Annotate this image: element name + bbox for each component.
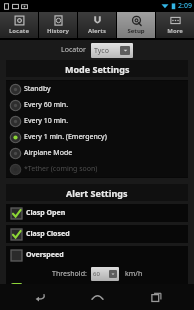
- button[interactable]: Locate: [0, 12, 38, 38]
- staticText: Threshold:: [52, 269, 87, 279]
- staticText: km/h: [125, 269, 143, 279]
- staticText: Every 60 min.: [24, 100, 69, 110]
- button[interactable]: 60: [91, 267, 119, 281]
- staticText: Locate: [9, 27, 29, 35]
- button[interactable]: Clasp Open: [6, 204, 188, 222]
- staticText: Overspeed: [26, 250, 64, 260]
- staticText: More: [167, 27, 183, 35]
- button[interactable]: History: [39, 12, 77, 38]
- staticText: Clasp Closed: [26, 229, 70, 239]
- button[interactable]: Setup: [117, 12, 155, 38]
- button[interactable]: Every 10 min.: [6, 113, 188, 129]
- staticText: *Tether (coming soon): [24, 164, 98, 174]
- staticText: 2:09: [178, 1, 192, 11]
- button[interactable]: Standby: [6, 81, 188, 97]
- button[interactable]: Tyco: [91, 43, 133, 58]
- staticText: History: [47, 27, 69, 35]
- button[interactable]: Every 60 min.: [6, 97, 188, 113]
- staticText: Alerts: [88, 27, 106, 35]
- staticText: 60: [93, 270, 100, 278]
- staticText: Every 10 min.: [24, 116, 69, 126]
- button[interactable]: Overspeed: [6, 246, 188, 264]
- button[interactable]: More: [156, 12, 194, 38]
- button[interactable]: Alerts: [78, 12, 116, 38]
- staticText: Locator: [61, 45, 86, 55]
- staticText: Standby: [24, 84, 51, 94]
- staticText: Mode Settings: [65, 63, 130, 75]
- staticText: Clasp Open: [26, 208, 66, 218]
- button[interactable]: Home: [77, 284, 117, 310]
- button[interactable]: Back: [19, 284, 59, 310]
- staticText: Setup: [127, 27, 145, 35]
- button[interactable]: Airplane Mode: [6, 145, 188, 161]
- button[interactable]: *Tether (coming soon): [6, 161, 188, 177]
- button[interactable]: Every 1 min. (Emergency): [6, 129, 188, 145]
- staticText: Alert Settings: [66, 187, 128, 199]
- button[interactable]: Recent apps: [136, 284, 176, 310]
- button[interactable]: Clasp Closed: [6, 225, 188, 243]
- staticText: Every 1 min. (Emergency): [24, 132, 107, 142]
- staticText: Tyco: [94, 46, 109, 56]
- staticText: Airplane Mode: [24, 148, 73, 158]
